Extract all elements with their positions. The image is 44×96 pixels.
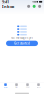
staticText: No messages yet	[11, 36, 33, 40]
staticText: Home	[3, 86, 7, 88]
button[interactable]: Compose	[31, 4, 37, 9]
staticText: Inbox	[2, 4, 14, 9]
button[interactable]: Account	[37, 4, 42, 9]
button[interactable]: Files	[11, 82, 22, 89]
staticText: More	[36, 86, 40, 88]
staticText: Get started	[14, 42, 30, 45]
staticText: Files	[15, 86, 18, 88]
button[interactable]: Search	[26, 4, 31, 9]
button[interactable]: Get started	[6, 41, 38, 46]
staticText: Chat	[26, 86, 29, 88]
button[interactable]: Chat	[22, 82, 33, 89]
button[interactable]: More	[33, 82, 44, 89]
button[interactable]: Home	[0, 82, 11, 89]
staticText: 9:41	[2, 0, 9, 4]
